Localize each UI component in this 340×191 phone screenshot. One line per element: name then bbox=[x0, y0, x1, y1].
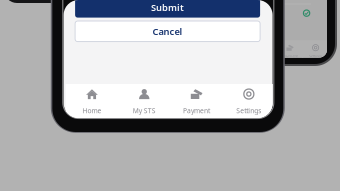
staticText: Home bbox=[82, 106, 101, 115]
staticText: Cancel bbox=[153, 25, 183, 37]
button[interactable]: Home bbox=[66, 84, 118, 118]
button[interactable]: My STS bbox=[118, 84, 170, 118]
staticText: Settings bbox=[309, 53, 322, 59]
button[interactable]: Payment bbox=[170, 84, 223, 118]
staticText: Settings bbox=[236, 106, 261, 115]
staticText: My STS bbox=[133, 106, 156, 115]
staticText: Submit bbox=[151, 1, 184, 14]
button[interactable]: Settings bbox=[223, 84, 275, 118]
button[interactable]: Submit bbox=[75, 0, 260, 18]
staticText: Payment bbox=[183, 106, 210, 115]
button[interactable]: Cancel bbox=[75, 21, 260, 42]
staticText: Payment bbox=[282, 53, 297, 59]
